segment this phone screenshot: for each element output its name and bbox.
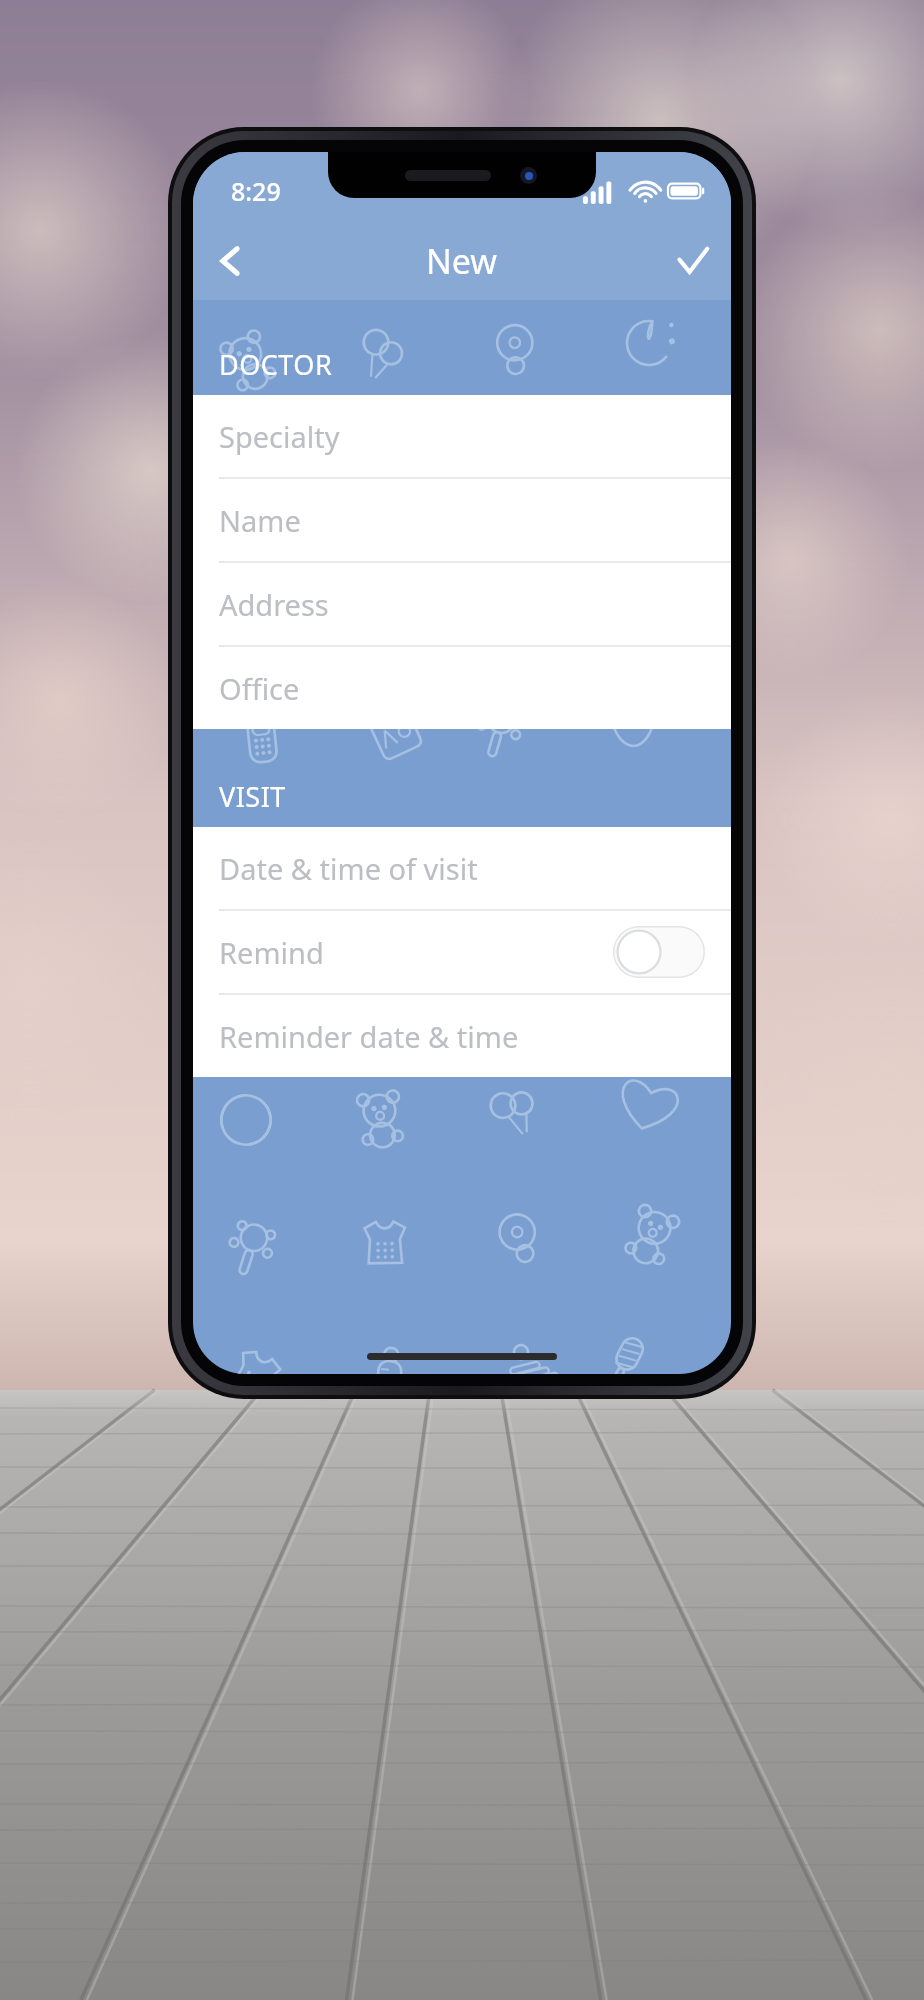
button[interactable]: Reminder date & time (193, 995, 731, 1077)
button[interactable]: Date & time of visit (193, 827, 731, 911)
staticText: Date & time of visit (219, 849, 705, 888)
button[interactable]: Office (193, 647, 731, 729)
button[interactable]: Save (655, 223, 731, 299)
button[interactable]: Remind (193, 911, 731, 995)
button[interactable]: Back (193, 223, 269, 299)
staticText: Office (219, 669, 705, 708)
staticText: Name (219, 501, 705, 540)
staticText: 8:29 (231, 174, 281, 208)
staticText: VISIT (219, 778, 286, 815)
staticText: DOCTOR (219, 346, 333, 383)
staticText: Specialty (219, 417, 705, 456)
staticText: Reminder date & time (219, 1017, 705, 1056)
staticText: Address (219, 585, 705, 624)
button[interactable]: Name (193, 479, 731, 563)
staticText: Remind (219, 933, 613, 972)
button[interactable]: Address (193, 563, 731, 647)
staticText: New (426, 238, 498, 284)
button[interactable]: Remind toggle (613, 926, 705, 978)
button[interactable]: Specialty (193, 395, 731, 479)
